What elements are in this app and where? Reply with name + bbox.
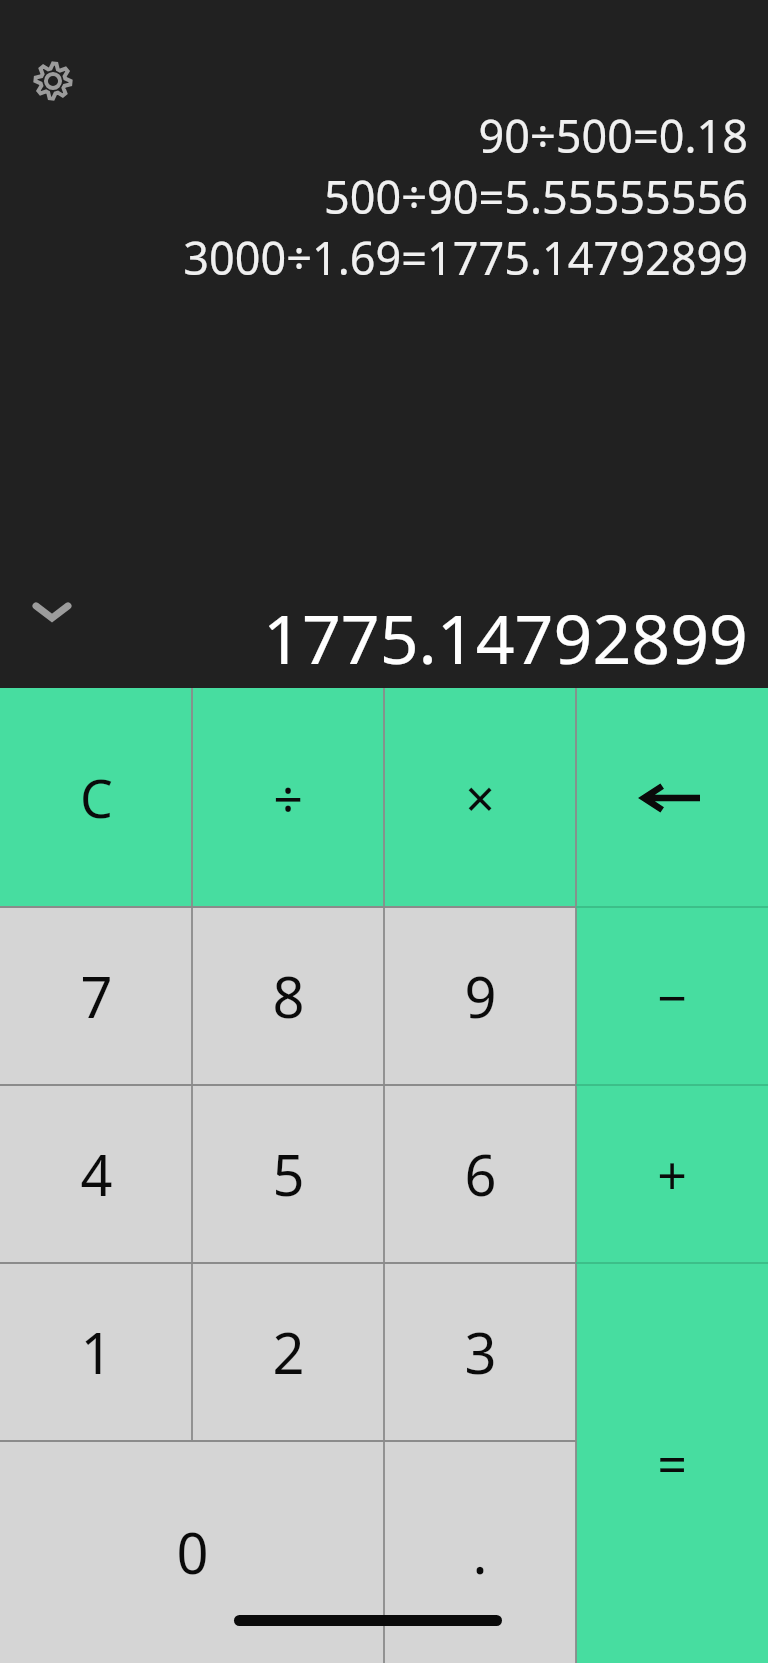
button[interactable]: 7 (0, 907, 192, 1085)
button[interactable]: 0 (0, 1441, 384, 1663)
staticText: ÷ (273, 762, 303, 833)
staticText: 0 (176, 1514, 209, 1590)
staticText: C (80, 762, 113, 833)
staticText: = (657, 1428, 687, 1499)
staticText: 6 (464, 1136, 497, 1212)
staticText: 1 (80, 1314, 113, 1390)
staticText: − (657, 961, 687, 1032)
button[interactable]: Show history (24, 584, 80, 640)
staticText: 3000÷1.69=1775.14792899 (183, 227, 748, 288)
staticText: 5 (272, 1136, 305, 1212)
staticText: × (465, 762, 495, 833)
staticText: 8 (272, 958, 305, 1034)
button[interactable]: 3 (384, 1263, 576, 1441)
staticText: 500÷90=5.55555556 (324, 166, 748, 227)
button[interactable]: 9 (384, 907, 576, 1085)
button[interactable]: ÷ (192, 688, 384, 907)
button[interactable]: C (0, 688, 192, 907)
button[interactable]: Backspace (576, 688, 768, 907)
button[interactable]: 8 (192, 907, 384, 1085)
button[interactable]: 5 (192, 1085, 384, 1263)
staticText: 3 (464, 1314, 497, 1390)
staticText: 1775.14792899 (263, 591, 748, 684)
button[interactable]: + (576, 1085, 768, 1263)
staticText: 4 (80, 1136, 113, 1212)
staticText: 7 (80, 958, 113, 1034)
button[interactable]: − (576, 907, 768, 1085)
staticText: 2 (272, 1314, 305, 1390)
staticText: + (657, 1139, 687, 1210)
button[interactable]: 6 (384, 1085, 576, 1263)
staticText: 9 (464, 958, 497, 1034)
button[interactable]: 1 (0, 1263, 192, 1441)
button[interactable]: × (384, 688, 576, 907)
staticText: . (472, 1514, 488, 1590)
button[interactable]: 4 (0, 1085, 192, 1263)
staticText: 90÷500=0.18 (478, 105, 748, 166)
button[interactable]: . (384, 1441, 576, 1663)
button[interactable]: 2 (192, 1263, 384, 1441)
button[interactable]: = (576, 1263, 768, 1663)
button[interactable]: Settings (27, 55, 79, 107)
